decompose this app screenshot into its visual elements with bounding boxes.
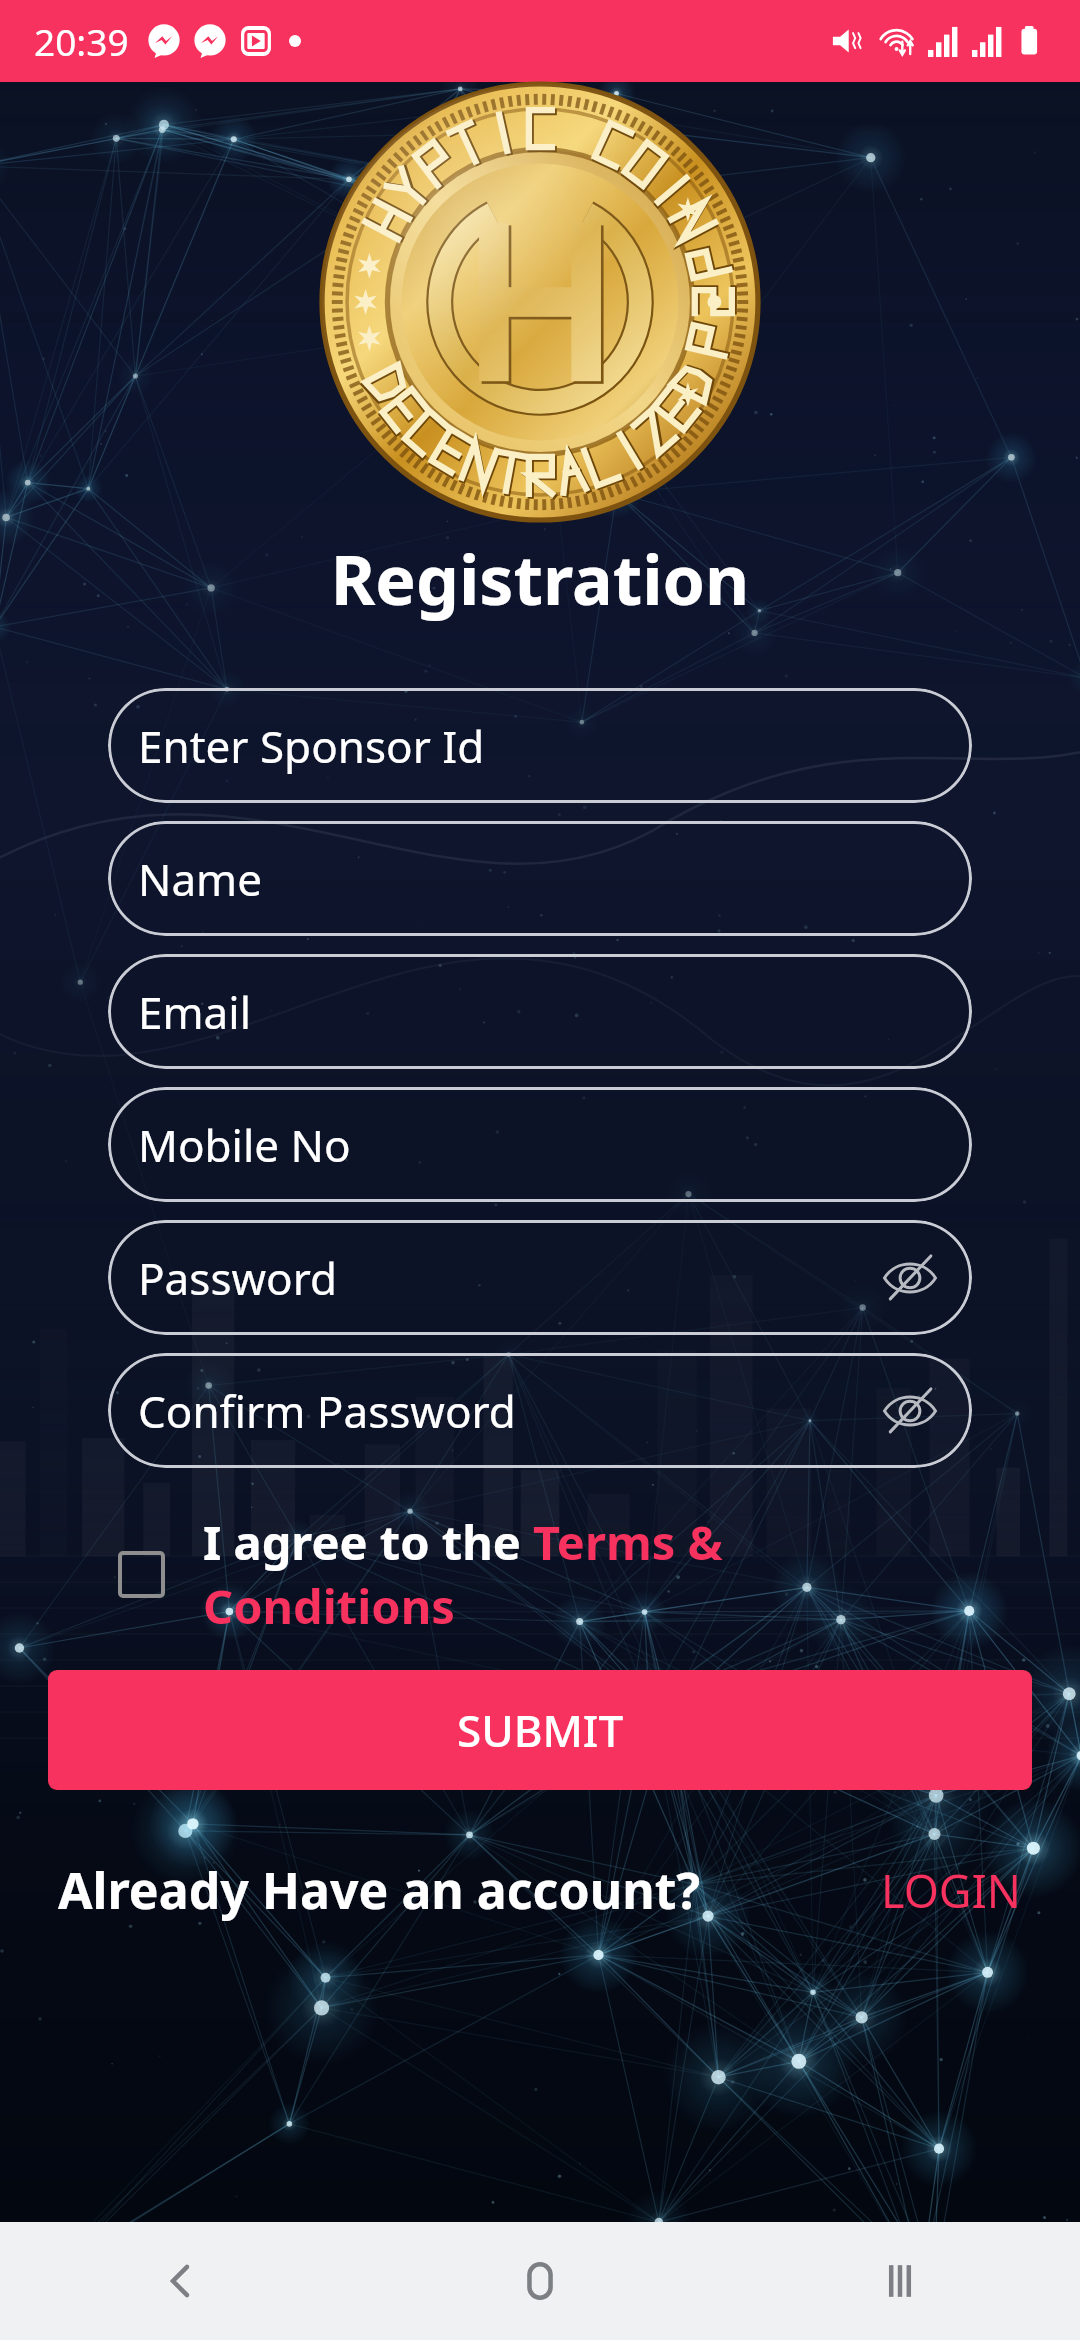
button[interactable]: Recent apps <box>720 2222 1080 2340</box>
staticText: Enter Sponsor Id <box>138 716 485 776</box>
staticText: Conditions <box>203 1574 455 1638</box>
staticText: Mobile No <box>138 1115 351 1175</box>
staticText: I agree to the <box>203 1510 533 1574</box>
staticText: Registration <box>0 532 1080 625</box>
button[interactable]: Agree to terms checkbox <box>118 1510 1020 1638</box>
staticText: Confirm Password <box>138 1381 516 1441</box>
staticText: 20:39 <box>34 16 129 66</box>
staticText: Password <box>138 1248 338 1308</box>
button[interactable]: Show password <box>878 1246 942 1310</box>
button[interactable]: Password <box>108 1220 972 1335</box>
button[interactable]: Name <box>108 821 972 936</box>
button[interactable]: Email <box>108 954 972 1069</box>
button[interactable]: Mobile No <box>108 1087 972 1202</box>
staticText: SUBMIT <box>457 1700 624 1760</box>
button[interactable]: Back <box>0 2222 360 2340</box>
staticText: Already Have an account? <box>58 1856 701 1924</box>
button[interactable]: Home <box>360 2222 720 2340</box>
button[interactable]: SUBMIT <box>48 1670 1032 1790</box>
staticText: Name <box>138 849 263 909</box>
other: Agree to terms checkbox <box>118 1551 165 1598</box>
staticText: Terms & <box>533 1510 723 1574</box>
button[interactable]: LOGIN <box>881 1860 1022 1921</box>
button[interactable]: Confirm Password <box>108 1353 972 1468</box>
staticText: Email <box>138 982 251 1042</box>
staticText: LOGIN <box>881 1860 1022 1921</box>
button[interactable]: Enter Sponsor Id <box>108 688 972 803</box>
button[interactable]: Show password <box>878 1379 942 1443</box>
